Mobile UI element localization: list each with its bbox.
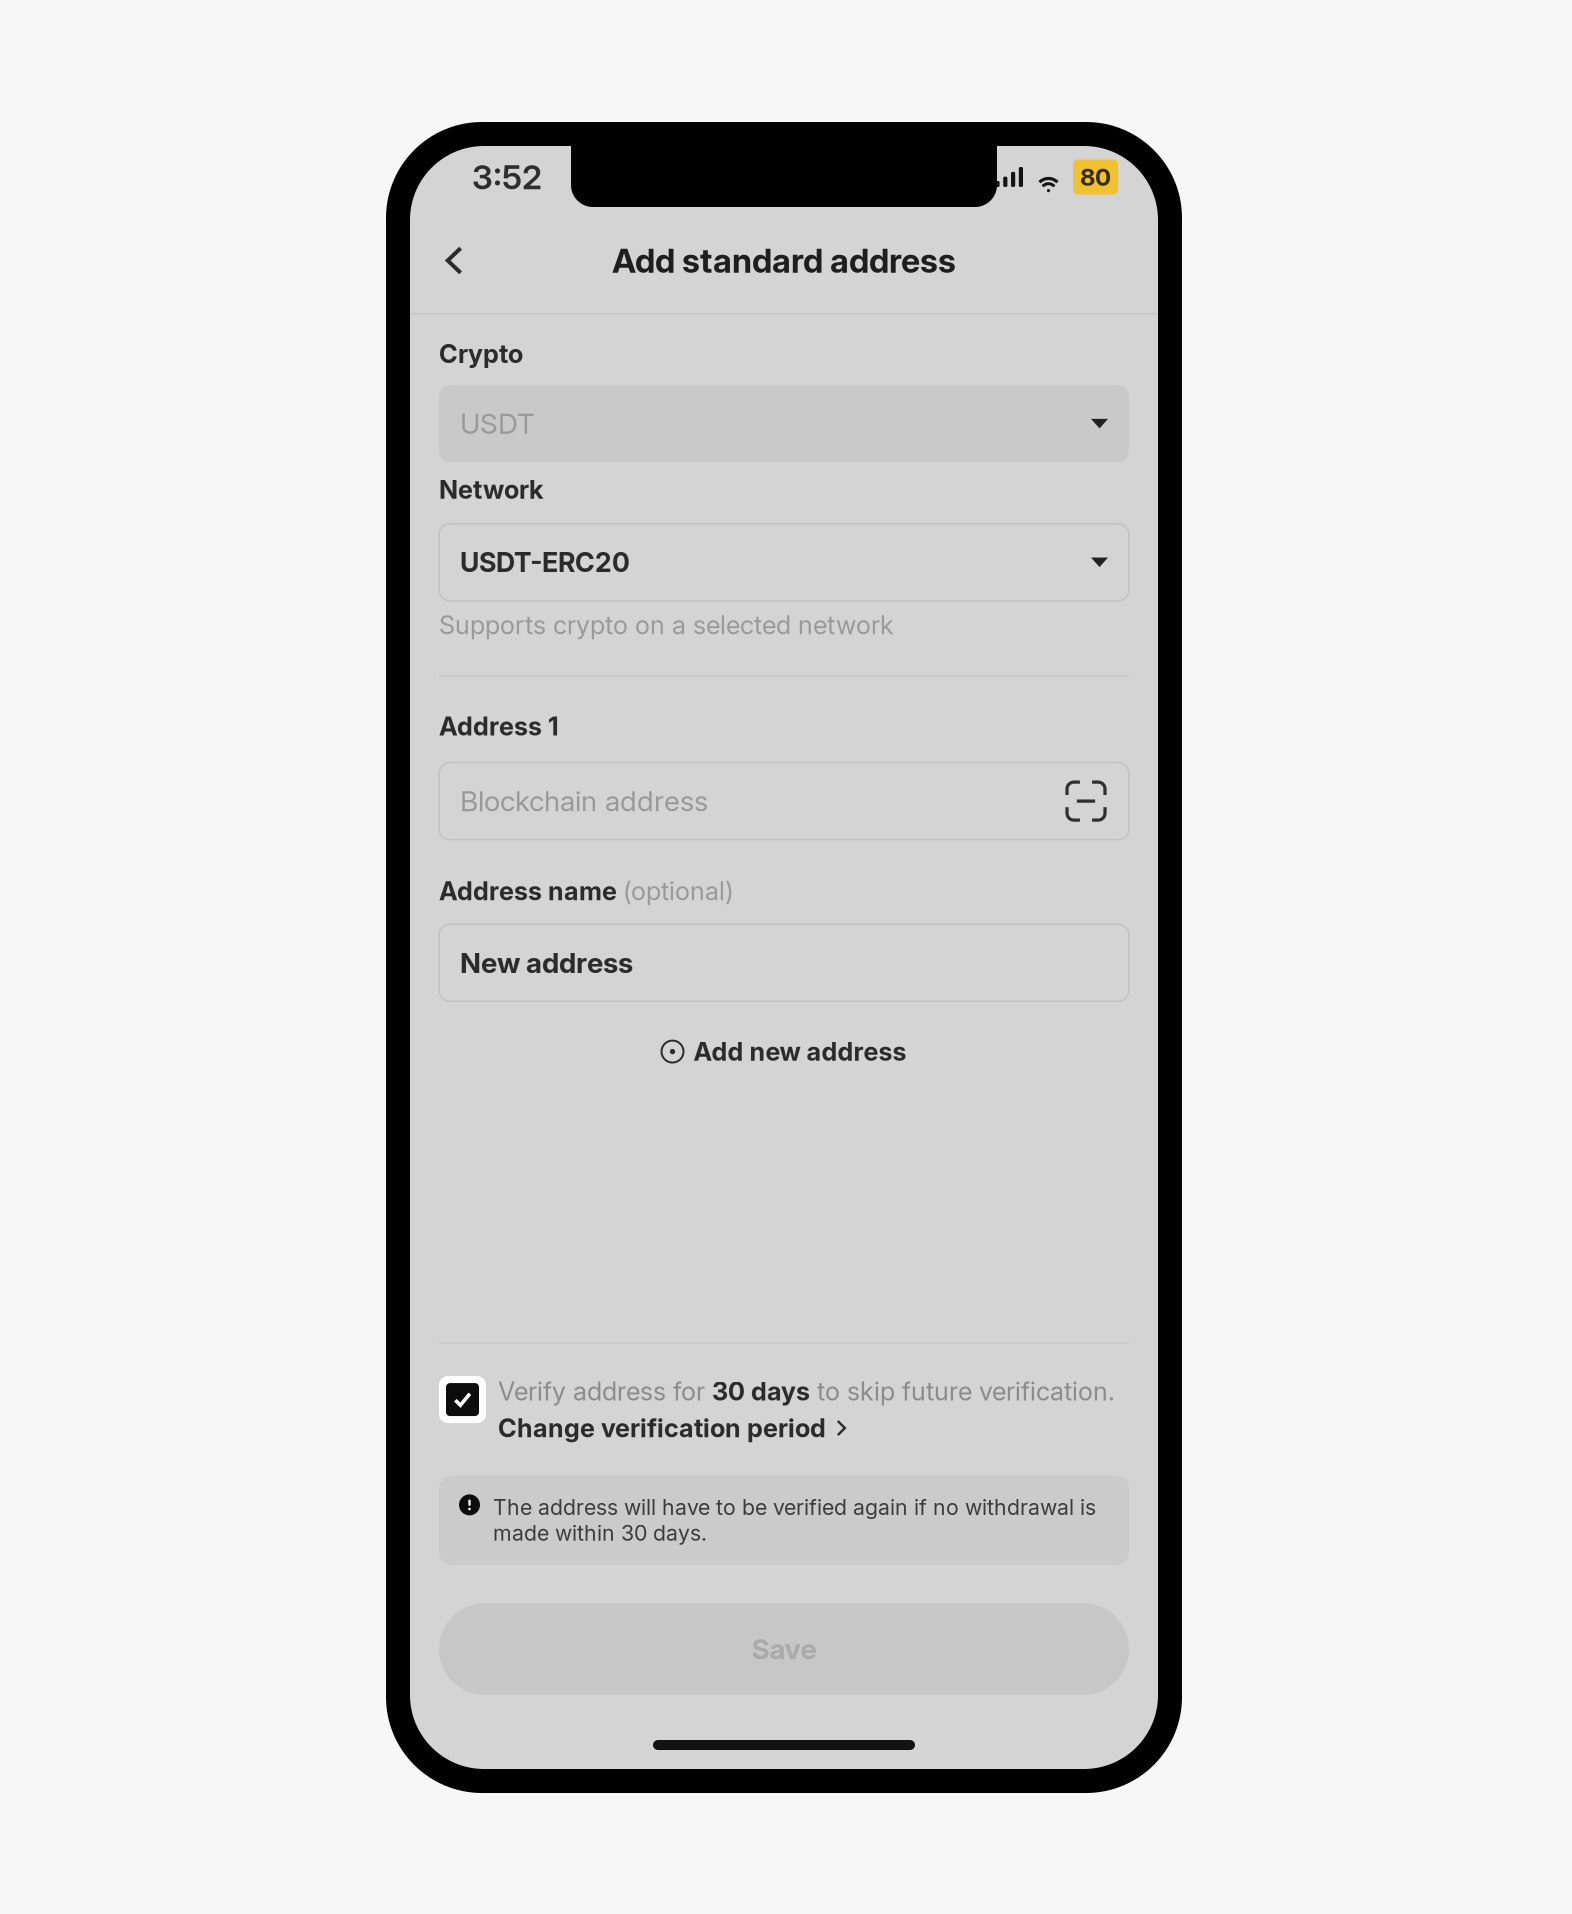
button[interactable]: Change verification period [498,1413,849,1443]
staticText: Blockchain address [460,784,708,818]
staticText: Change verification period [498,1413,826,1443]
staticText: Crypto [439,338,523,369]
button[interactable]: Save [439,1603,1129,1695]
staticText: Add standard address [612,240,956,281]
staticText: Network [439,474,543,505]
staticText: New address [460,946,633,980]
staticText: USDT-ERC20 [460,546,630,578]
staticText: to skip future verification. [810,1376,1115,1407]
staticText: 30 days [712,1376,810,1407]
staticText: Save [751,1632,816,1666]
button[interactable]: Back [428,233,482,287]
staticText: Supports crypto on a selected network [439,610,894,640]
staticText: (optional) [623,876,734,906]
staticText: 3:52 [472,157,542,197]
staticText: Address name [439,876,623,906]
staticText: Address 1 [439,711,559,742]
button[interactable]: Scan address [1064,779,1108,823]
staticText: Add new address [693,1036,906,1067]
staticText: Verify address for [498,1376,712,1407]
button[interactable]: Add new address [661,1020,906,1083]
button[interactable]: Verify address for 30 days [439,1376,486,1423]
staticText: USDT [460,407,535,441]
staticText: 80 [1080,162,1111,191]
staticText: The address will have to be verified aga… [493,1494,1096,1546]
